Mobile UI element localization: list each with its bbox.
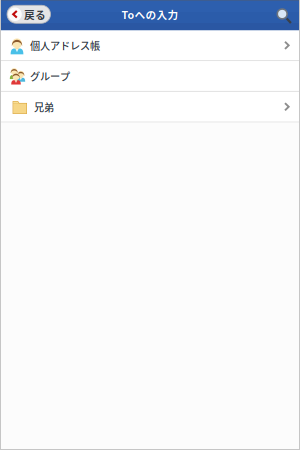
staticText: 個人アドレス帳 [30,38,100,53]
button[interactable]: Search [276,8,292,24]
button[interactable]: 兄弟 [0,92,300,123]
staticText: グループ [30,69,70,83]
staticText: 兄弟 [34,99,54,114]
button[interactable]: グループ [0,61,300,92]
staticText: 戻る [24,6,46,22]
button[interactable]: 戻る [7,5,50,23]
staticText: Toへの入力 [121,6,178,22]
button[interactable]: 個人アドレス帳 [0,30,300,61]
